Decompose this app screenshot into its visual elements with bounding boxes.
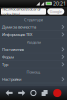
staticText: Информация ТЕХ	[2, 32, 32, 37]
staticText: Постижения	[2, 47, 24, 52]
button[interactable]: Opera menu	[53, 89, 61, 97]
staticText: Google	[50, 9, 62, 14]
staticText: Раздели	[26, 39, 40, 45]
staticText: 20:21	[53, 0, 66, 7]
button[interactable]: Tabs	[42, 90, 48, 96]
button[interactable]: Back	[6, 89, 13, 96]
button[interactable]: Forward	[18, 89, 25, 96]
staticText: Помощ	[26, 69, 40, 75]
staticText: Настройки	[2, 77, 21, 82]
staticText: Тур	[2, 62, 8, 67]
staticText: file:///localhost/sdcard/index.html	[2, 6, 40, 17]
button[interactable]: Reload	[31, 90, 36, 96]
button[interactable]: Тур	[0, 61, 67, 68]
button[interactable]: Форум	[0, 53, 67, 61]
button[interactable]: Информация ТЕХ	[0, 31, 67, 38]
button[interactable]: Google	[47, 8, 64, 15]
button[interactable]: file:///localhost/sdcard/index.html	[1, 8, 46, 15]
staticText: Структура	[24, 17, 43, 22]
staticText: Форум	[2, 54, 14, 59]
button[interactable]: Постижения	[0, 46, 67, 53]
button[interactable]: Настройки	[0, 76, 67, 83]
staticText: Думи за вечността	[2, 24, 36, 30]
button[interactable]: Думи за вечността	[0, 23, 67, 31]
